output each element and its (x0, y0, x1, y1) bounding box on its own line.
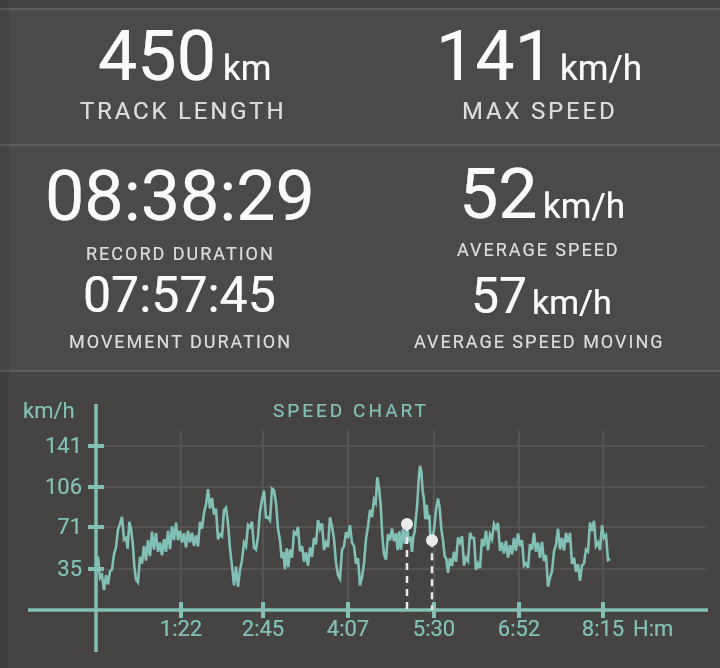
button[interactable] (0, 10, 360, 144)
staticText: 52 (459, 153, 538, 235)
staticText: km (223, 48, 272, 89)
staticText: km/h (543, 186, 626, 227)
staticText: 2:45 (223, 616, 303, 642)
staticText: MAX SPEED (462, 97, 618, 125)
button[interactable] (360, 146, 720, 370)
staticText: 6:52 (479, 616, 559, 642)
staticText: RECORD DURATION (86, 243, 275, 264)
staticText: H:m (633, 616, 674, 642)
staticText: 4:07 (308, 616, 388, 642)
staticText: 57 (471, 267, 528, 326)
staticText: 141 (436, 15, 555, 97)
staticText: MOVEMENT DURATION (69, 331, 293, 352)
staticText: 07:57:45 (83, 266, 276, 325)
staticText: AVERAGE SPEED (457, 239, 620, 260)
staticText: 141 (42, 433, 82, 459)
staticText: AVERAGE SPEED MOVING (414, 331, 665, 352)
staticText: 1:22 (141, 616, 221, 642)
staticText: km/h (532, 282, 612, 322)
button[interactable] (0, 146, 360, 370)
staticText: 8:15 (563, 616, 643, 642)
staticText: 35 (42, 556, 82, 582)
staticText: 5:30 (394, 616, 474, 642)
staticText: 106 (42, 474, 82, 500)
button[interactable] (360, 10, 720, 144)
staticText: SPEED CHART (273, 399, 429, 421)
staticText: km/h (23, 398, 75, 424)
button[interactable] (0, 372, 720, 668)
staticText: 450 (98, 15, 217, 97)
staticText: 71 (42, 514, 82, 540)
staticText: 08:38:29 (45, 155, 315, 237)
staticText: km/h (560, 48, 643, 89)
staticText: TRACK LENGTH (80, 97, 287, 125)
